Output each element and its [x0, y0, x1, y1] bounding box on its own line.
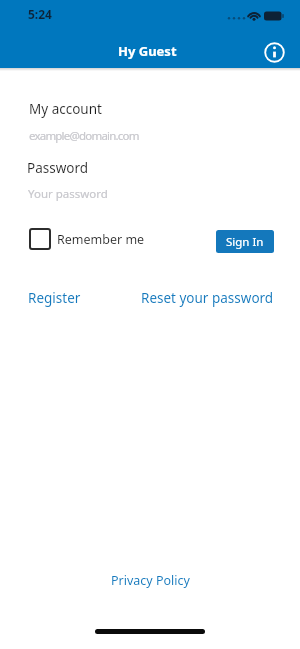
button[interactable]: [262, 40, 287, 65]
button[interactable]: example@domain.com: [29, 128, 139, 144]
button[interactable]: Register: [28, 289, 81, 307]
staticText: My account: [29, 100, 102, 118]
button[interactable]: Privacy Policy: [111, 572, 190, 589]
button[interactable]: Reset your password: [141, 289, 274, 307]
staticText: 5:24: [28, 6, 52, 22]
staticText: Remember me: [57, 231, 145, 248]
staticText: Password: [27, 159, 89, 177]
button[interactable]: Remember me: [29, 228, 145, 250]
button[interactable]: Your password: [28, 186, 108, 202]
button[interactable]: Sign In: [216, 230, 274, 253]
staticText: Hy Guest: [118, 42, 177, 60]
staticText: Sign In: [226, 234, 264, 250]
